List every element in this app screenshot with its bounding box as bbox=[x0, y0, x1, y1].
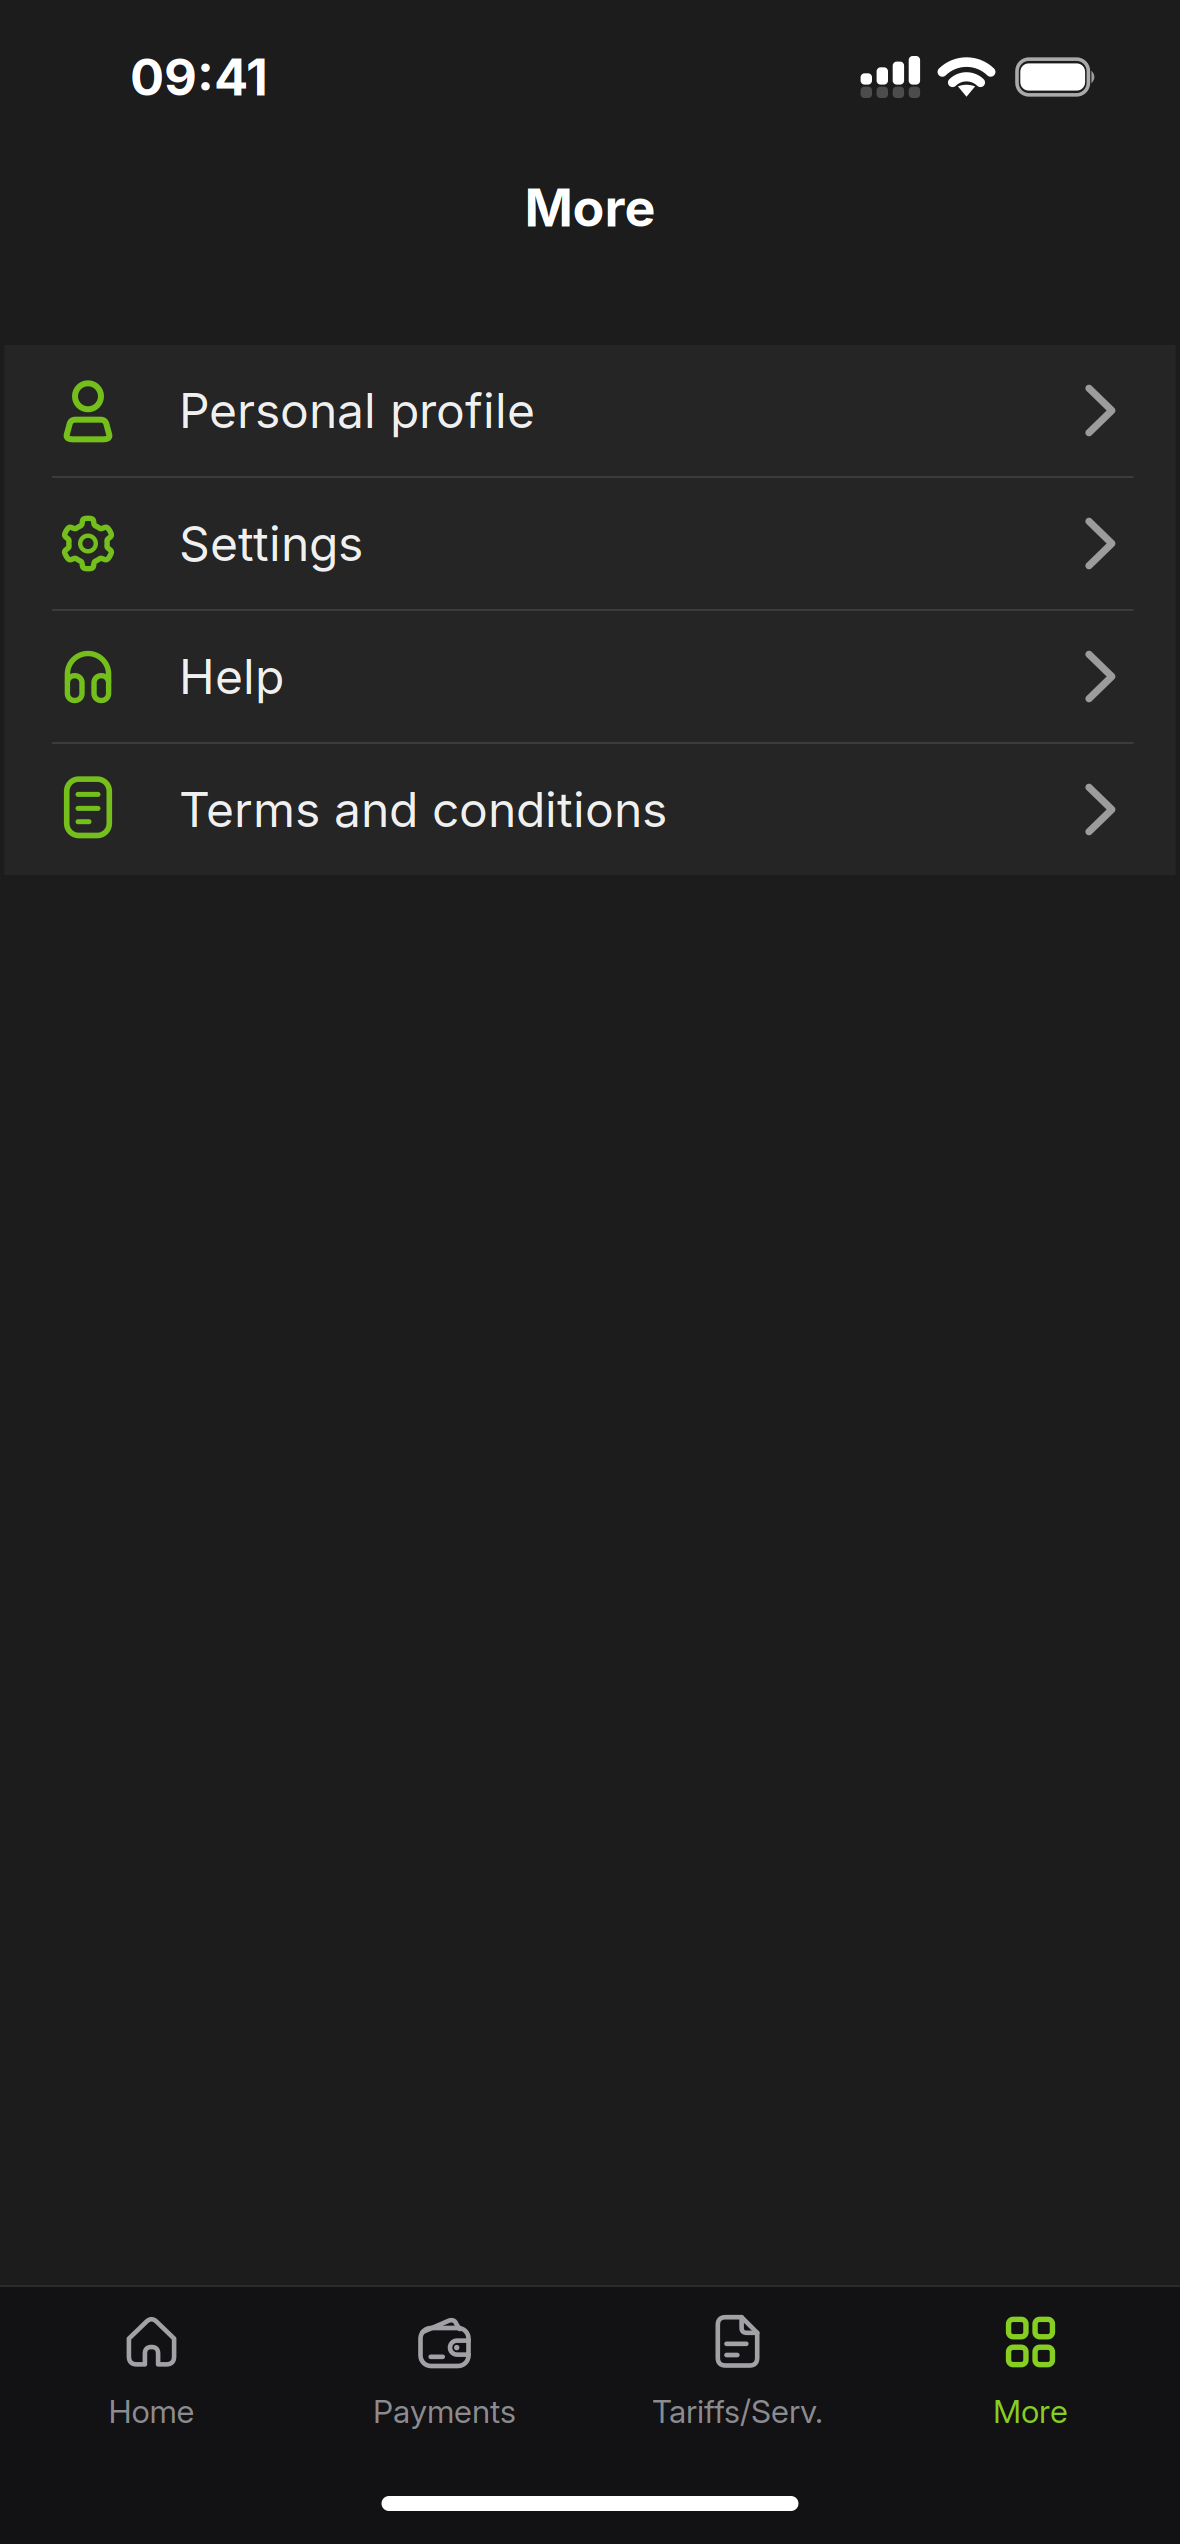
staticText: 09:41 bbox=[130, 46, 268, 108]
button[interactable]: Home bbox=[5, 2287, 298, 2457]
button[interactable]: Payments bbox=[298, 2287, 591, 2457]
staticText: Terms and conditions bbox=[179, 780, 667, 839]
staticText: More bbox=[993, 2392, 1068, 2431]
staticText: Tariffs/Serv. bbox=[652, 2392, 823, 2431]
button[interactable]: Personal profile bbox=[4, 345, 1175, 476]
staticText: Help bbox=[179, 647, 284, 706]
button[interactable]: Tariffs/Serv. bbox=[591, 2287, 884, 2457]
button[interactable]: Settings bbox=[4, 478, 1175, 609]
button[interactable]: Help bbox=[4, 611, 1175, 742]
staticText: Personal profile bbox=[179, 381, 535, 440]
staticText: Payments bbox=[373, 2392, 516, 2431]
staticText: More bbox=[524, 176, 655, 239]
button[interactable]: More bbox=[884, 2287, 1177, 2457]
staticText: Home bbox=[108, 2392, 194, 2431]
button[interactable]: Terms and conditions bbox=[4, 744, 1175, 875]
staticText: Settings bbox=[179, 514, 363, 573]
